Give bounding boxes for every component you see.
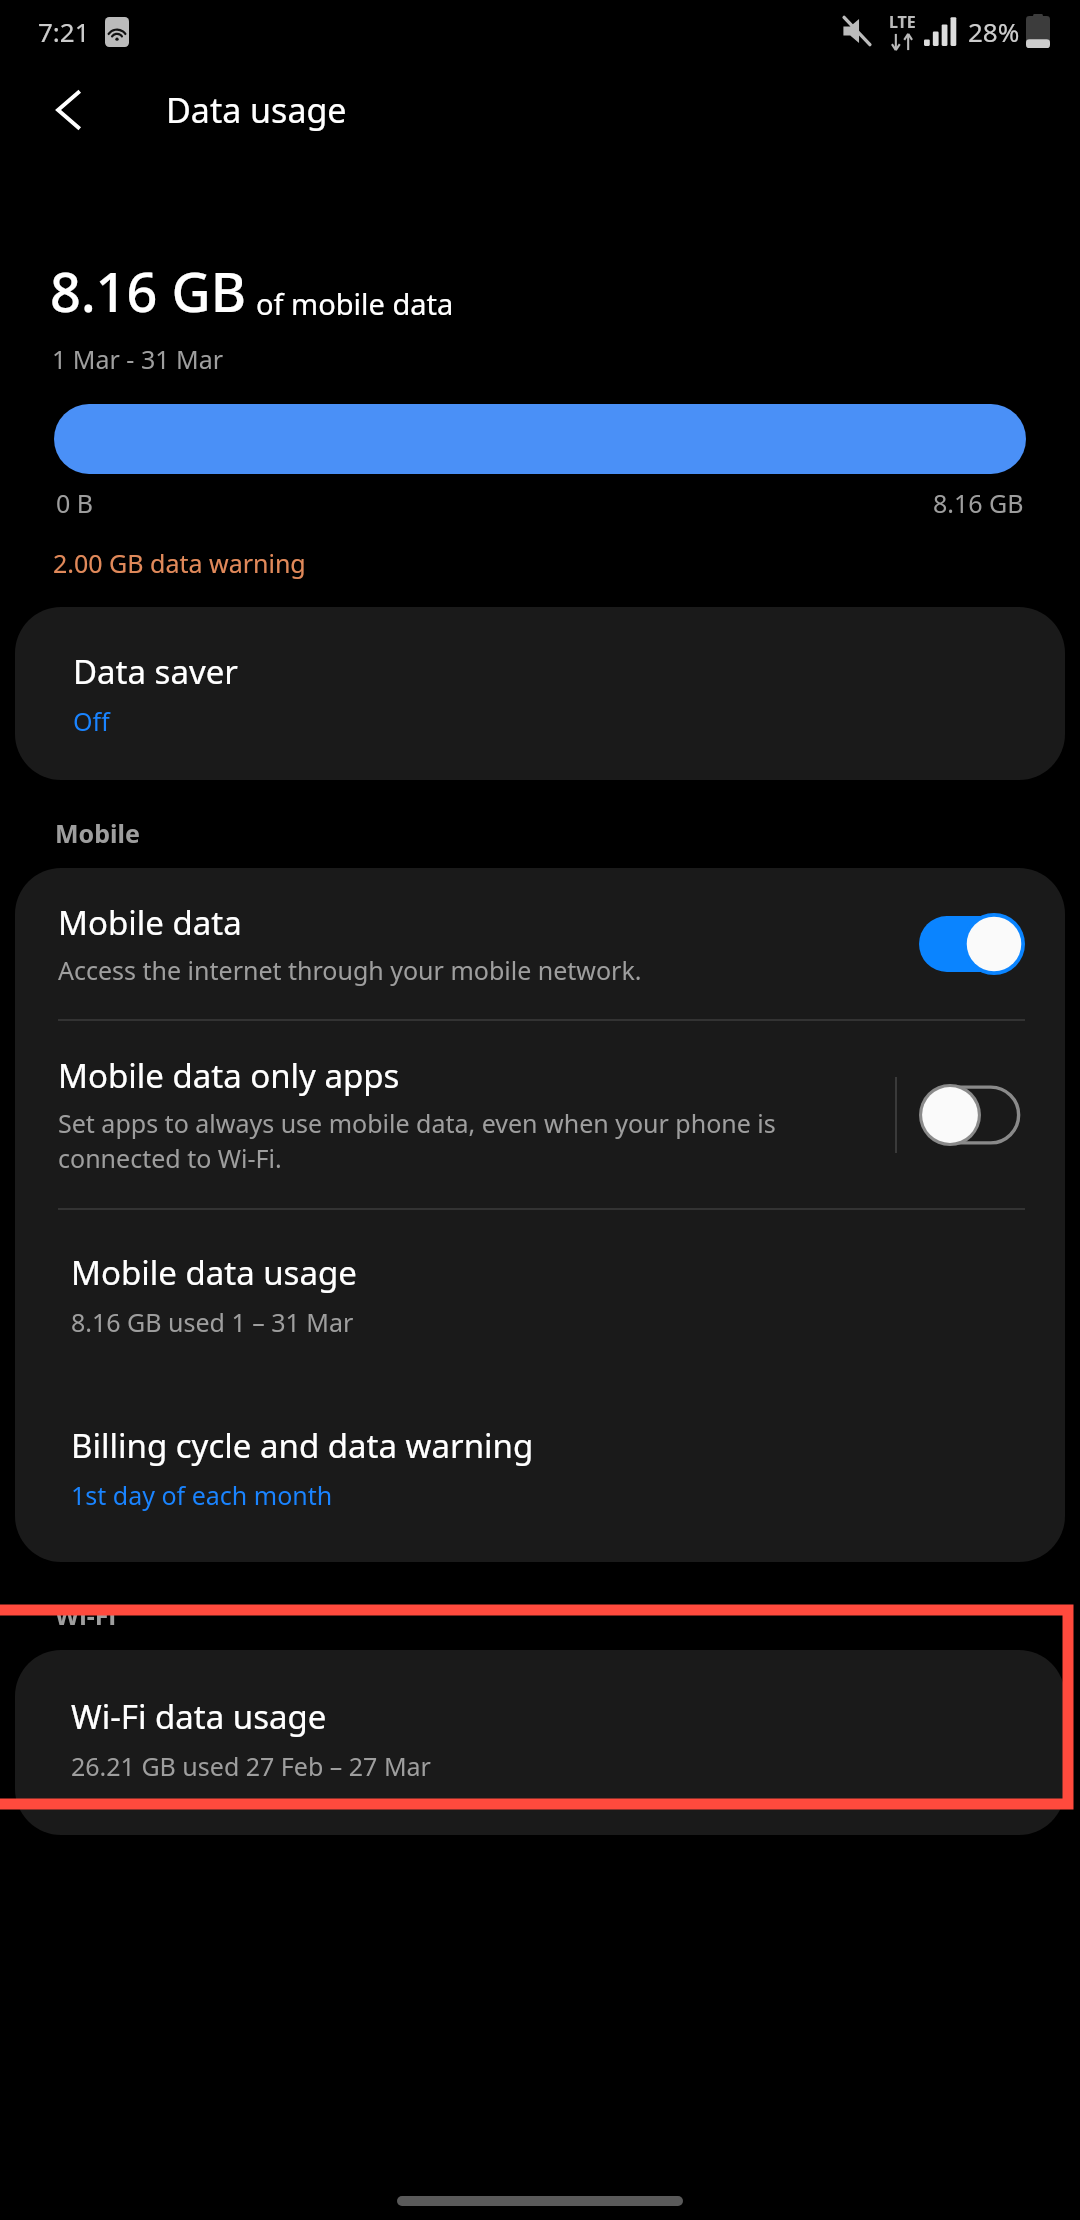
staticText: 0 B (56, 486, 94, 520)
staticText: Data usage (166, 87, 347, 133)
staticText: 2.00 GB data warning (53, 546, 306, 580)
staticText: 8.16 GB used 1 – 31 Mar (71, 1305, 354, 1339)
staticText: Data saver (73, 649, 238, 694)
staticText: Off (73, 704, 110, 738)
button[interactable]: Billing cycle and data warning (15, 1379, 1065, 1562)
button[interactable]: Back (34, 74, 106, 146)
button[interactable]: Mobile data (15, 868, 1065, 1019)
staticText: Billing cycle and data warning (71, 1423, 534, 1468)
staticText: 28% (968, 14, 1020, 49)
staticText: Access the internet through your mobile … (58, 953, 642, 987)
button[interactable]: Mobile data only apps (15, 1021, 1065, 1208)
staticText: Mobile data (58, 900, 242, 945)
staticText: 26.21 GB used 27 Feb – 27 Mar (71, 1749, 431, 1783)
staticText: 8.16 GB (933, 486, 1024, 520)
button[interactable]: Mobile data usage (15, 1210, 1065, 1379)
staticText: Mobile data only apps (58, 1053, 400, 1098)
staticText: 1 Mar - 31 Mar (52, 342, 224, 376)
staticText: LTE (889, 11, 916, 33)
button[interactable]: Mobile data toggle (919, 913, 1025, 975)
staticText: 1st day of each month (71, 1478, 333, 1512)
staticText: 8.16 GB (50, 254, 246, 328)
staticText: Mobile (55, 816, 140, 850)
staticText: Set apps to always use mobile data, even… (58, 1106, 885, 1176)
button[interactable]: Wi-Fi data usage (15, 1650, 1065, 1835)
staticText: Wi-Fi (55, 1598, 116, 1632)
staticText: Mobile data usage (71, 1250, 357, 1295)
staticText: Wi-Fi data usage (71, 1694, 327, 1739)
staticText: of mobile data (256, 284, 454, 323)
button[interactable]: Mobile data only apps toggle (919, 1084, 1025, 1146)
button[interactable]: Data saver (15, 607, 1065, 780)
staticText: 7:21 (38, 14, 90, 49)
